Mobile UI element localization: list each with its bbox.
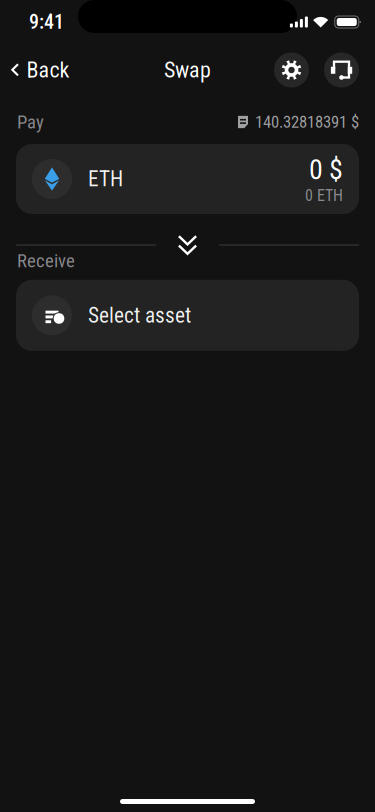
staticText: Swap: [164, 57, 211, 83]
button[interactable]: Select asset: [16, 280, 359, 351]
staticText: Receive: [17, 250, 75, 272]
staticText: ETH: [88, 166, 123, 191]
staticText: 9:41: [29, 10, 64, 34]
button[interactable]: Swap direction: [167, 230, 207, 260]
button[interactable]: Support: [324, 48, 359, 92]
staticText: Pay: [17, 111, 44, 133]
button[interactable]: Back: [0, 48, 79, 92]
button[interactable]: Settings: [274, 48, 309, 92]
staticText: 0 $: [309, 153, 343, 186]
button[interactable]: ETH: [16, 144, 359, 214]
staticText: Select asset: [88, 303, 191, 328]
staticText: 0 ETH: [305, 186, 343, 205]
staticText: 140.32818391 $: [255, 112, 359, 132]
button[interactable]: 140.32818391 $: [238, 112, 359, 132]
staticText: Back: [26, 57, 69, 83]
